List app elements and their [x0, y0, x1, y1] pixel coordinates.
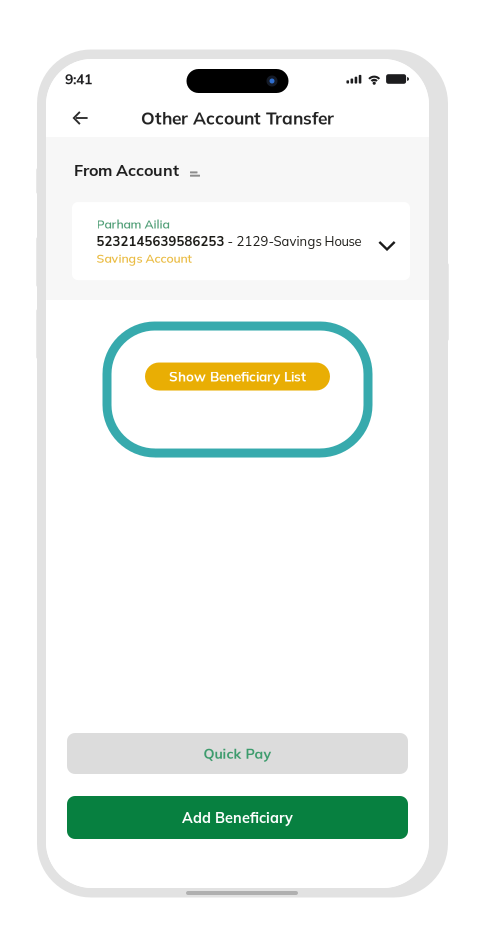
staticText: Other Account Transfer [141, 107, 334, 129]
staticText: Savings Account [96, 250, 191, 266]
staticText: From Account [74, 160, 179, 180]
button[interactable]: Quick Pay [67, 733, 408, 774]
staticText: Show Beneficiary List [169, 368, 306, 385]
staticText: Quick Pay [203, 745, 271, 762]
staticText: 5232145639586253 - 2129-Savings House [96, 233, 361, 249]
button[interactable]: Add Beneficiary [67, 796, 408, 839]
staticText: 9:41 [65, 70, 92, 88]
staticText: Add Beneficiary [182, 808, 293, 827]
staticText: Parham Ailia [96, 216, 169, 232]
button[interactable]: Parham Ailia [72, 202, 410, 280]
button[interactable]: Back [62, 103, 98, 133]
button[interactable]: Show Beneficiary List [145, 362, 330, 390]
